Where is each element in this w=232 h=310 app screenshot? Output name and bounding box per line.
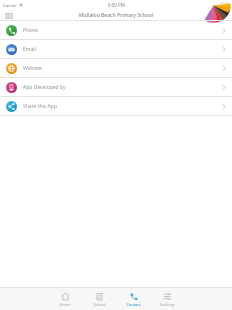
button[interactable]: Open navigation menu <box>3 10 14 21</box>
staticText: Settings <box>160 302 175 307</box>
button[interactable]: App Developed by <box>0 78 232 96</box>
button[interactable]: Email <box>0 40 232 58</box>
button[interactable]: Home <box>48 288 82 310</box>
button[interactable]: Contact <box>116 288 150 310</box>
button[interactable]: Website <box>0 59 232 77</box>
staticText: 6:50 PM <box>108 2 125 8</box>
button[interactable]: School <box>82 288 116 310</box>
staticText: Email <box>23 46 36 53</box>
staticText: Mullaloo Beach Primary School <box>79 12 154 19</box>
button[interactable]: Share this App <box>0 97 232 115</box>
staticText: Website <box>23 65 42 72</box>
button[interactable]: Settings <box>150 288 184 310</box>
staticText: Carrier <box>3 2 17 8</box>
staticText: Phone <box>23 27 39 34</box>
staticText: School <box>93 302 106 307</box>
staticText: Share this App <box>23 103 57 110</box>
staticText: Home <box>59 302 71 307</box>
staticText: Contact <box>126 302 141 307</box>
button[interactable]: Phone <box>0 21 232 39</box>
staticText: App Developed by <box>23 84 66 91</box>
